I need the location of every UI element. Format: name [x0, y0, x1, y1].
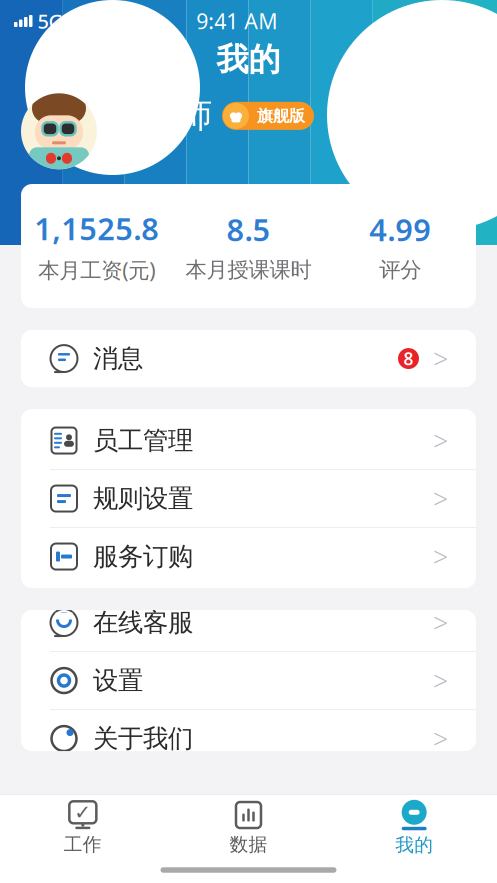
- staticText: 设置: [93, 665, 143, 696]
- staticText: ◖: [67, 10, 78, 32]
- staticText: 本月授课课时: [185, 257, 311, 283]
- button[interactable]: 我的: [331, 791, 497, 860]
- staticText: 4.99: [369, 209, 431, 250]
- staticText: >: [433, 481, 448, 516]
- staticText: 旗舰版: [257, 106, 305, 126]
- staticText: 规则设置: [93, 483, 193, 514]
- staticText: 校长: [113, 139, 159, 167]
- staticText: 在线客服: [93, 607, 193, 638]
- staticText: 王老师: [113, 95, 212, 136]
- button[interactable]: ✓: [0, 792, 166, 860]
- staticText: 5G: [37, 8, 63, 34]
- staticText: 8: [403, 347, 413, 370]
- staticText: >: [433, 663, 448, 698]
- staticText: 评分: [379, 257, 421, 283]
- staticText: 8.5: [226, 209, 270, 250]
- staticText: 本月工资(元): [38, 256, 155, 284]
- button[interactable]: 规则设置: [21, 470, 476, 527]
- staticText: >: [433, 423, 448, 458]
- staticText: 服务订购: [93, 541, 193, 572]
- button[interactable]: 服务订购: [21, 528, 476, 585]
- staticText: ✓: [74, 801, 91, 824]
- staticText: >: [433, 539, 448, 574]
- staticText: 9:41 AM: [196, 7, 277, 35]
- staticText: >: [433, 605, 448, 640]
- staticText: 工作: [64, 833, 102, 856]
- button[interactable]: 设置: [21, 652, 476, 709]
- staticText: >: [433, 341, 448, 376]
- button[interactable]: 数据: [166, 792, 331, 860]
- staticText: >: [433, 721, 448, 756]
- button[interactable]: 在线客服: [21, 594, 476, 651]
- staticText: 员工管理: [93, 425, 193, 456]
- button[interactable]: 关于我们: [21, 710, 476, 767]
- button[interactable]: 消息: [21, 330, 476, 387]
- staticText: 我的: [395, 833, 433, 856]
- staticText: 消息: [93, 343, 143, 374]
- staticText: 我的: [216, 40, 280, 79]
- staticText: 1,1525.8: [34, 208, 159, 249]
- staticText: 数据: [229, 833, 267, 856]
- staticText: 关于我们: [93, 723, 193, 754]
- button[interactable]: 员工管理: [21, 412, 476, 469]
